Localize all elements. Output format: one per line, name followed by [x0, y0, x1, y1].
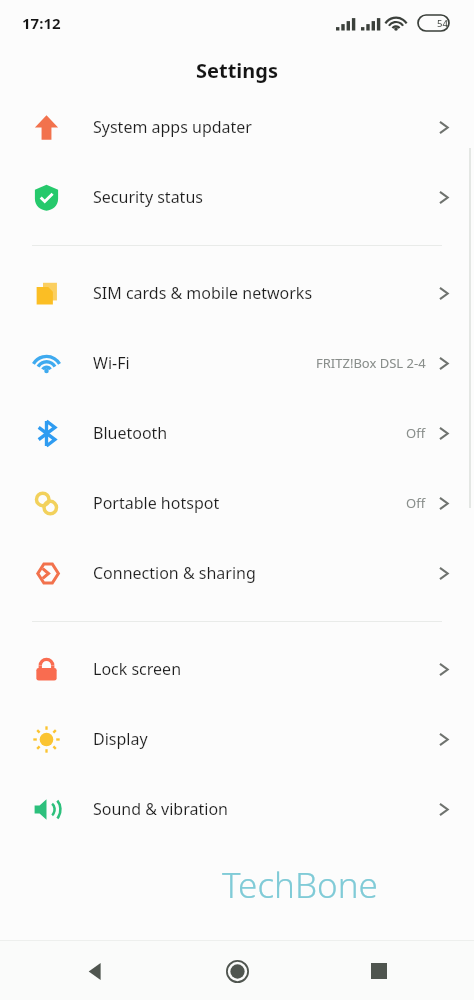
staticText: Portable hotspot [93, 492, 220, 514]
button[interactable]: Wi-Fi [0, 328, 474, 398]
button[interactable]: Back [70, 946, 120, 996]
staticText: Display [93, 728, 148, 750]
staticText: Settings [196, 57, 278, 84]
staticText: SIM cards & mobile networks [93, 282, 313, 304]
staticText: Bluetooth [93, 422, 168, 444]
button[interactable]: Portable hotspot [0, 468, 474, 538]
staticText: Off [406, 494, 426, 512]
staticText: Connection & sharing [93, 562, 256, 584]
staticText: 17:12 [22, 13, 61, 33]
staticText: Security status [93, 186, 203, 208]
staticText: FRITZ!Box DSL 2-4 [316, 354, 426, 372]
button[interactable]: Recent apps [354, 946, 404, 996]
button[interactable]: Display [0, 704, 474, 774]
button[interactable]: SIM cards & mobile networks [0, 258, 474, 328]
staticText: System apps updater [93, 116, 252, 138]
staticText: Sound & vibration [93, 798, 228, 820]
button[interactable]: Lock screen [0, 634, 474, 704]
staticText: 54 [437, 17, 448, 30]
button[interactable]: Sound & vibration [0, 774, 474, 844]
staticText: Lock screen [93, 658, 182, 680]
button[interactable]: Home [212, 946, 262, 996]
button[interactable]: System apps updater [0, 92, 474, 162]
button[interactable]: Security status [0, 162, 474, 232]
staticText: Wi-Fi [93, 352, 130, 374]
staticText: TechBone [222, 861, 378, 909]
button[interactable]: Connection & sharing [0, 538, 474, 608]
staticText: Off [406, 424, 426, 442]
button[interactable]: Bluetooth [0, 398, 474, 468]
